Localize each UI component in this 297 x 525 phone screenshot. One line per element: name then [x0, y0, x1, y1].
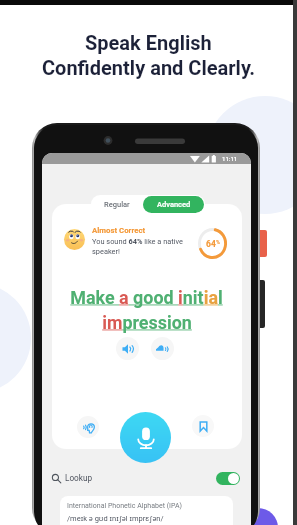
staticText: Almost Correct	[92, 226, 146, 235]
button[interactable]: Play audio	[116, 337, 139, 360]
button[interactable]: Record	[120, 412, 171, 463]
button[interactable]: Advanced	[143, 196, 204, 213]
button[interactable]: Lookup toggle	[216, 472, 240, 485]
staticText: Confidently and Clearly.	[42, 56, 256, 79]
staticText: /meɪk ə gʊd ɪnɪʃəl ɪmprɛʃən/	[67, 514, 164, 523]
staticText: Lookup	[65, 473, 93, 483]
button[interactable]: Bookmark	[192, 415, 214, 437]
staticText: 64	[206, 239, 216, 249]
staticText: You sound 64% like a native speaker!	[92, 237, 196, 256]
button[interactable]: Listen	[77, 416, 99, 438]
staticText: International Phonetic Alphabet (IPA)	[67, 502, 182, 510]
button[interactable]: Lookup	[52, 467, 240, 489]
staticText: impression	[102, 312, 192, 333]
staticText: Make a good initial	[70, 287, 223, 308]
staticText: Speak English	[85, 31, 212, 54]
button[interactable]: Play slowly	[151, 337, 174, 360]
button[interactable]: Regular	[91, 195, 143, 213]
staticText: %	[216, 239, 221, 245]
staticText: 11:11	[222, 155, 238, 162]
staticText: Advanced	[157, 200, 191, 209]
staticText: Regular	[104, 200, 130, 209]
